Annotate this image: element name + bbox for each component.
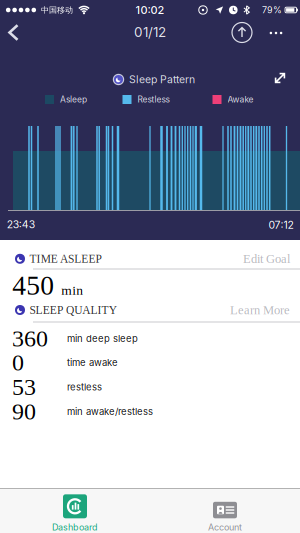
staticText: restless xyxy=(67,381,102,393)
button[interactable]: Share xyxy=(231,21,253,43)
staticText: 07:12 xyxy=(268,219,293,231)
staticText: Awake xyxy=(227,94,253,105)
button[interactable]: Learn More xyxy=(230,303,290,317)
button[interactable]: More xyxy=(266,26,286,40)
staticText: min awake/restless xyxy=(67,406,153,417)
staticText: 90 xyxy=(12,398,36,425)
button[interactable]: Dashboard xyxy=(20,491,130,533)
staticText: Restless xyxy=(137,94,169,105)
button[interactable]: Expand xyxy=(270,68,290,88)
staticText: time awake xyxy=(67,357,118,368)
staticText: SLEEP QUALITY xyxy=(29,304,117,316)
staticText: 01/12 xyxy=(134,24,166,40)
button[interactable]: Edit Goal xyxy=(243,252,290,266)
staticText: min deep sleep xyxy=(67,333,138,344)
staticText: Learn More xyxy=(230,303,290,317)
staticText: 0 xyxy=(12,349,24,376)
staticText: 10:02 xyxy=(135,3,164,17)
button[interactable]: Account xyxy=(170,491,280,533)
staticText: Asleep xyxy=(60,94,87,105)
staticText: 中国移动 xyxy=(41,5,73,15)
staticText: 360 xyxy=(12,325,48,352)
staticText: 23:43 xyxy=(7,218,35,231)
staticText: Sleep Pattern xyxy=(129,73,195,86)
staticText: 450 xyxy=(12,270,54,301)
staticText: min xyxy=(61,283,83,298)
staticText: 79% xyxy=(262,5,282,15)
staticText: 53 xyxy=(12,374,36,400)
staticText: Account xyxy=(208,522,242,533)
staticText: Dashboard xyxy=(52,522,98,533)
button[interactable]: Back xyxy=(6,23,21,42)
staticText: TIME ASLEEP xyxy=(29,252,101,265)
staticText: Edit Goal xyxy=(243,252,290,266)
